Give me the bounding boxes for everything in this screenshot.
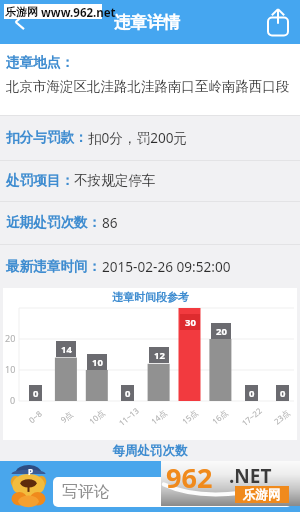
staticText: 10点 — [87, 406, 107, 426]
staticText: 962 — [166, 459, 213, 496]
staticText: 12 — [154, 349, 165, 362]
staticText: 违章地点： — [6, 54, 74, 71]
staticText: 20 — [216, 325, 227, 338]
staticText: 近期处罚次数： — [6, 214, 102, 231]
staticText: 14点 — [149, 406, 169, 426]
staticText: 扣0分，罚200元 — [88, 128, 188, 147]
staticText: 17~22 — [239, 405, 264, 428]
staticText: 2015-02-26 09:52:00 — [102, 257, 231, 276]
button[interactable]: Back — [0, 2, 40, 42]
staticText: 最新违章时间： — [6, 258, 102, 275]
staticText: 0 — [33, 387, 39, 400]
staticText: 违章时间段参考 — [112, 290, 189, 304]
staticText: 每周处罚次数 — [0, 443, 300, 459]
staticText: 30 — [185, 316, 196, 329]
button[interactable]: Share — [258, 2, 298, 42]
staticText: 10 — [5, 363, 16, 375]
staticText: 0 — [125, 387, 131, 400]
staticText: 14 — [61, 343, 72, 356]
staticText: 15点 — [180, 406, 200, 426]
staticText: 写评论 — [62, 482, 110, 502]
staticText: 10 — [92, 356, 103, 369]
staticText: 北京市海淀区北洼路北洼路南口至岭南路西口段 — [6, 78, 290, 95]
staticText: 0 — [280, 387, 286, 400]
staticText: .NET — [229, 463, 272, 489]
staticText: 违章详情 — [114, 12, 180, 33]
staticText: 16点 — [210, 406, 230, 426]
staticText: 86 — [102, 213, 118, 232]
button[interactable]: 写评论 — [53, 477, 292, 507]
staticText: 不按规定停车 — [74, 172, 156, 189]
staticText: 乐游网 — [243, 487, 281, 503]
staticText: 0 — [249, 387, 255, 400]
staticText: 0 — [10, 394, 16, 406]
staticText: 9点 — [58, 408, 75, 425]
staticText: 23点 — [272, 406, 292, 426]
staticText: 扣分与罚款： — [6, 129, 88, 146]
staticText: 0~8 — [26, 408, 44, 425]
staticText: www.962.net — [41, 5, 116, 20]
staticText: 11~13 — [116, 405, 141, 428]
staticText: 处罚项目： — [6, 172, 74, 189]
staticText: P — [28, 466, 33, 477]
staticText: 20 — [5, 332, 16, 344]
staticText: 乐游网 — [5, 5, 38, 19]
